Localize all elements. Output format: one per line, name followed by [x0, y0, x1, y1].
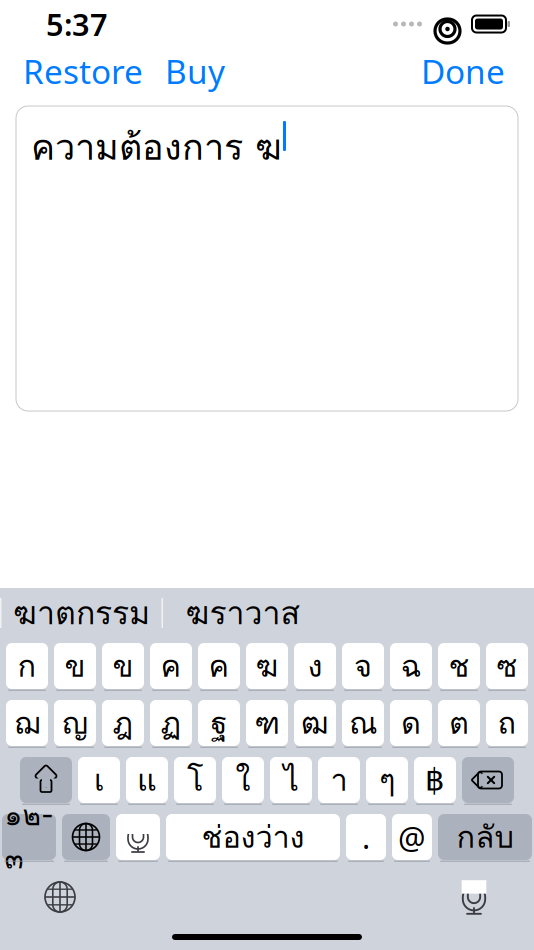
staticText: ฎ [112, 699, 133, 747]
staticText: ค [160, 642, 181, 690]
button[interactable]: ญ [54, 700, 96, 746]
button[interactable]: ฒ [294, 700, 336, 746]
staticText: ฌ [14, 699, 40, 747]
staticText: ข [112, 642, 133, 690]
button[interactable]: ก [6, 643, 48, 689]
staticText: . [362, 817, 370, 857]
button[interactable]: Dictate [446, 872, 502, 922]
button[interactable]: Shift [20, 757, 72, 803]
button[interactable]: ข [102, 643, 144, 689]
button[interactable]: @ [392, 814, 432, 860]
staticText: ช [448, 642, 469, 690]
staticText: ฒ [301, 699, 329, 747]
button[interactable]: ถ [486, 700, 528, 746]
button[interactable]: ค [150, 643, 192, 689]
staticText: ฆราวาส [185, 588, 300, 638]
button[interactable]: ใ [222, 757, 264, 803]
button[interactable]: ฌ [6, 700, 48, 746]
button[interactable]: ฏ [150, 700, 192, 746]
staticText: ฆ [255, 642, 278, 690]
staticText: ต [449, 699, 469, 747]
staticText: ง [307, 642, 322, 690]
staticText: ฏ [160, 699, 181, 747]
button[interactable]: โ [174, 757, 216, 803]
staticText: ถ [497, 699, 516, 747]
button[interactable]: ฆาตกรรม [1, 591, 161, 635]
staticText: ฉ [400, 642, 421, 690]
staticText: ซ [496, 642, 517, 690]
staticText: Restore [23, 49, 143, 93]
staticText: ช่องว่าง [201, 813, 304, 861]
button[interactable]: แ [126, 757, 168, 803]
button[interactable]: ฆราวาส [163, 591, 323, 635]
staticText: กลับ [456, 813, 513, 861]
staticText: ความต้องการ ฆ [31, 119, 282, 175]
button[interactable]: ฉ [390, 643, 432, 689]
button[interactable]: ๑๒๓ [2, 814, 56, 860]
button[interactable]: Done [415, 43, 511, 99]
staticText: ฿ [425, 763, 445, 797]
staticText: ก [17, 642, 36, 690]
button[interactable]: ซ [486, 643, 528, 689]
staticText: แ [137, 756, 157, 804]
button[interactable]: Next keyboard [62, 814, 110, 860]
button[interactable]: ฐ [198, 700, 240, 746]
button[interactable]: ฎ [102, 700, 144, 746]
staticText: โ [187, 756, 203, 804]
staticText: ๆ [379, 756, 395, 804]
staticText: ๑๒๓ [4, 794, 53, 880]
staticText: 5:37 [46, 4, 108, 44]
staticText: ด [401, 699, 421, 747]
staticText: @ [398, 817, 426, 857]
staticText: ข [64, 642, 85, 690]
button[interactable]: ต [438, 700, 480, 746]
button[interactable]: ฑ [246, 700, 288, 746]
staticText: Buy [165, 49, 225, 93]
staticText: า [330, 756, 347, 804]
staticText: ณ [349, 699, 377, 747]
staticText: ใ [235, 756, 250, 804]
button[interactable]: ฿ [414, 757, 456, 803]
button[interactable]: . [346, 814, 386, 860]
button[interactable]: จ [342, 643, 384, 689]
button[interactable]: ค [198, 643, 240, 689]
button[interactable]: Buy [159, 43, 231, 99]
button[interactable]: Dictate [116, 814, 160, 860]
staticText: ค [208, 642, 229, 690]
button[interactable]: า [318, 757, 360, 803]
button[interactable]: ง [294, 643, 336, 689]
button[interactable]: ณ [342, 700, 384, 746]
button[interactable]: ช่องว่าง [166, 814, 340, 860]
staticText: ไ [283, 756, 298, 804]
button[interactable]: ช [438, 643, 480, 689]
button[interactable]: Delete [462, 757, 514, 803]
button[interactable]: เ [78, 757, 120, 803]
staticText: ฑ [254, 699, 279, 747]
staticText: ฆาตกรรม [13, 588, 150, 638]
button[interactable]: ไ [270, 757, 312, 803]
staticText: จ [354, 642, 372, 690]
staticText: ฐ [210, 699, 227, 747]
staticText: เ [94, 756, 104, 804]
button[interactable]: Next keyboard [32, 872, 88, 922]
button[interactable]: กลับ [438, 814, 532, 860]
staticText: ญ [62, 699, 88, 747]
button[interactable]: Restore [17, 43, 149, 99]
button[interactable]: ด [390, 700, 432, 746]
button[interactable]: ฆ [246, 643, 288, 689]
button[interactable]: ๆ [366, 757, 408, 803]
button[interactable]: ข [54, 643, 96, 689]
staticText: Done [421, 49, 505, 93]
